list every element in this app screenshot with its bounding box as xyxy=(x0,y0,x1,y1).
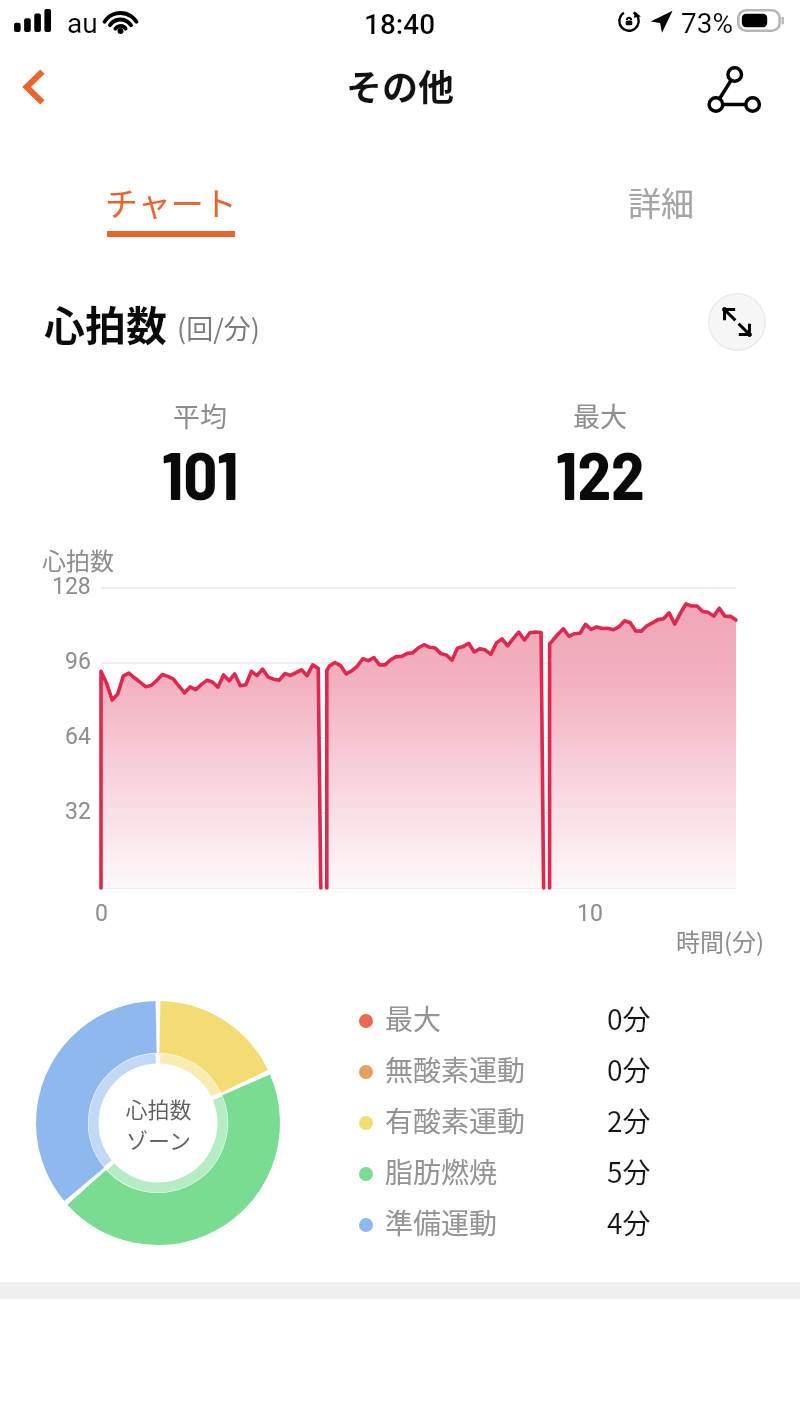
staticText: 73% xyxy=(681,7,733,40)
button[interactable]: 脂肪燃焼 xyxy=(359,1148,651,1199)
staticText: 2分 xyxy=(607,1100,651,1141)
staticText: 詳細 xyxy=(628,178,694,226)
staticText: 無酸素運動 xyxy=(385,1049,526,1090)
staticText: 128 xyxy=(52,573,91,600)
staticText: 10 xyxy=(577,900,603,927)
staticText: 脂肪燃焼 xyxy=(385,1151,498,1192)
staticText: 心拍数 xyxy=(44,293,167,352)
staticText: 心拍数 ゾーン xyxy=(125,1092,192,1155)
staticText: au xyxy=(67,7,98,40)
button[interactable]: 準備運動 xyxy=(359,1199,651,1250)
staticText: チャート xyxy=(105,178,237,226)
staticText: 96 xyxy=(65,648,91,675)
staticText: 32 xyxy=(65,798,91,825)
button[interactable]: Expand chart xyxy=(708,293,766,351)
button[interactable]: 最大 xyxy=(400,396,800,476)
staticText: 有酸素運動 xyxy=(385,1100,526,1141)
button[interactable]: 有酸素運動 xyxy=(359,1097,651,1148)
staticText: 122 xyxy=(556,433,645,513)
staticText: 準備運動 xyxy=(385,1202,498,1243)
staticText: 時間(分) xyxy=(676,923,765,958)
button[interactable]: 最大 xyxy=(359,995,651,1046)
staticText: 5分 xyxy=(607,1151,651,1192)
staticText: 101 xyxy=(162,433,239,513)
staticText: 64 xyxy=(65,723,91,750)
staticText: 4分 xyxy=(607,1202,651,1243)
staticText: 平均 xyxy=(173,396,227,435)
staticText: 18:40 xyxy=(364,8,436,41)
staticText: 心拍数 xyxy=(42,542,114,577)
button[interactable]: 平均 xyxy=(0,396,400,476)
button[interactable]: 無酸素運動 xyxy=(359,1046,651,1097)
button[interactable]: Share xyxy=(692,58,760,122)
staticText: 0分 xyxy=(607,998,651,1039)
button[interactable]: Back xyxy=(0,55,70,119)
staticText: 最大 xyxy=(385,998,442,1039)
button[interactable]: チャート xyxy=(46,140,296,250)
staticText: 最大 xyxy=(573,396,627,435)
button[interactable]: 詳細 xyxy=(536,140,786,250)
staticText: その他 xyxy=(346,59,455,111)
staticText: 0 xyxy=(95,900,108,927)
staticText: (回/分) xyxy=(177,308,260,347)
staticText: 0分 xyxy=(607,1049,651,1090)
